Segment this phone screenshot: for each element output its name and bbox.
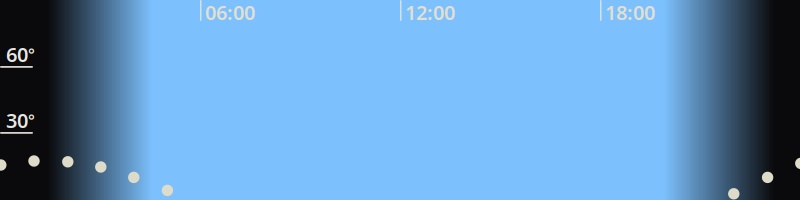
staticText: 30: [6, 107, 28, 134]
staticText: °: [28, 44, 35, 65]
group: 60 degrees: [6, 41, 35, 68]
group: 30 degrees: [6, 107, 35, 134]
staticText: 60: [6, 41, 28, 68]
staticText: 12:00: [405, 0, 455, 26]
staticText: 06:00: [205, 0, 255, 26]
staticText: 18:00: [605, 0, 655, 26]
button[interactable]: Moon altitude chart: [0, 0, 800, 200]
staticText: °: [28, 110, 35, 131]
